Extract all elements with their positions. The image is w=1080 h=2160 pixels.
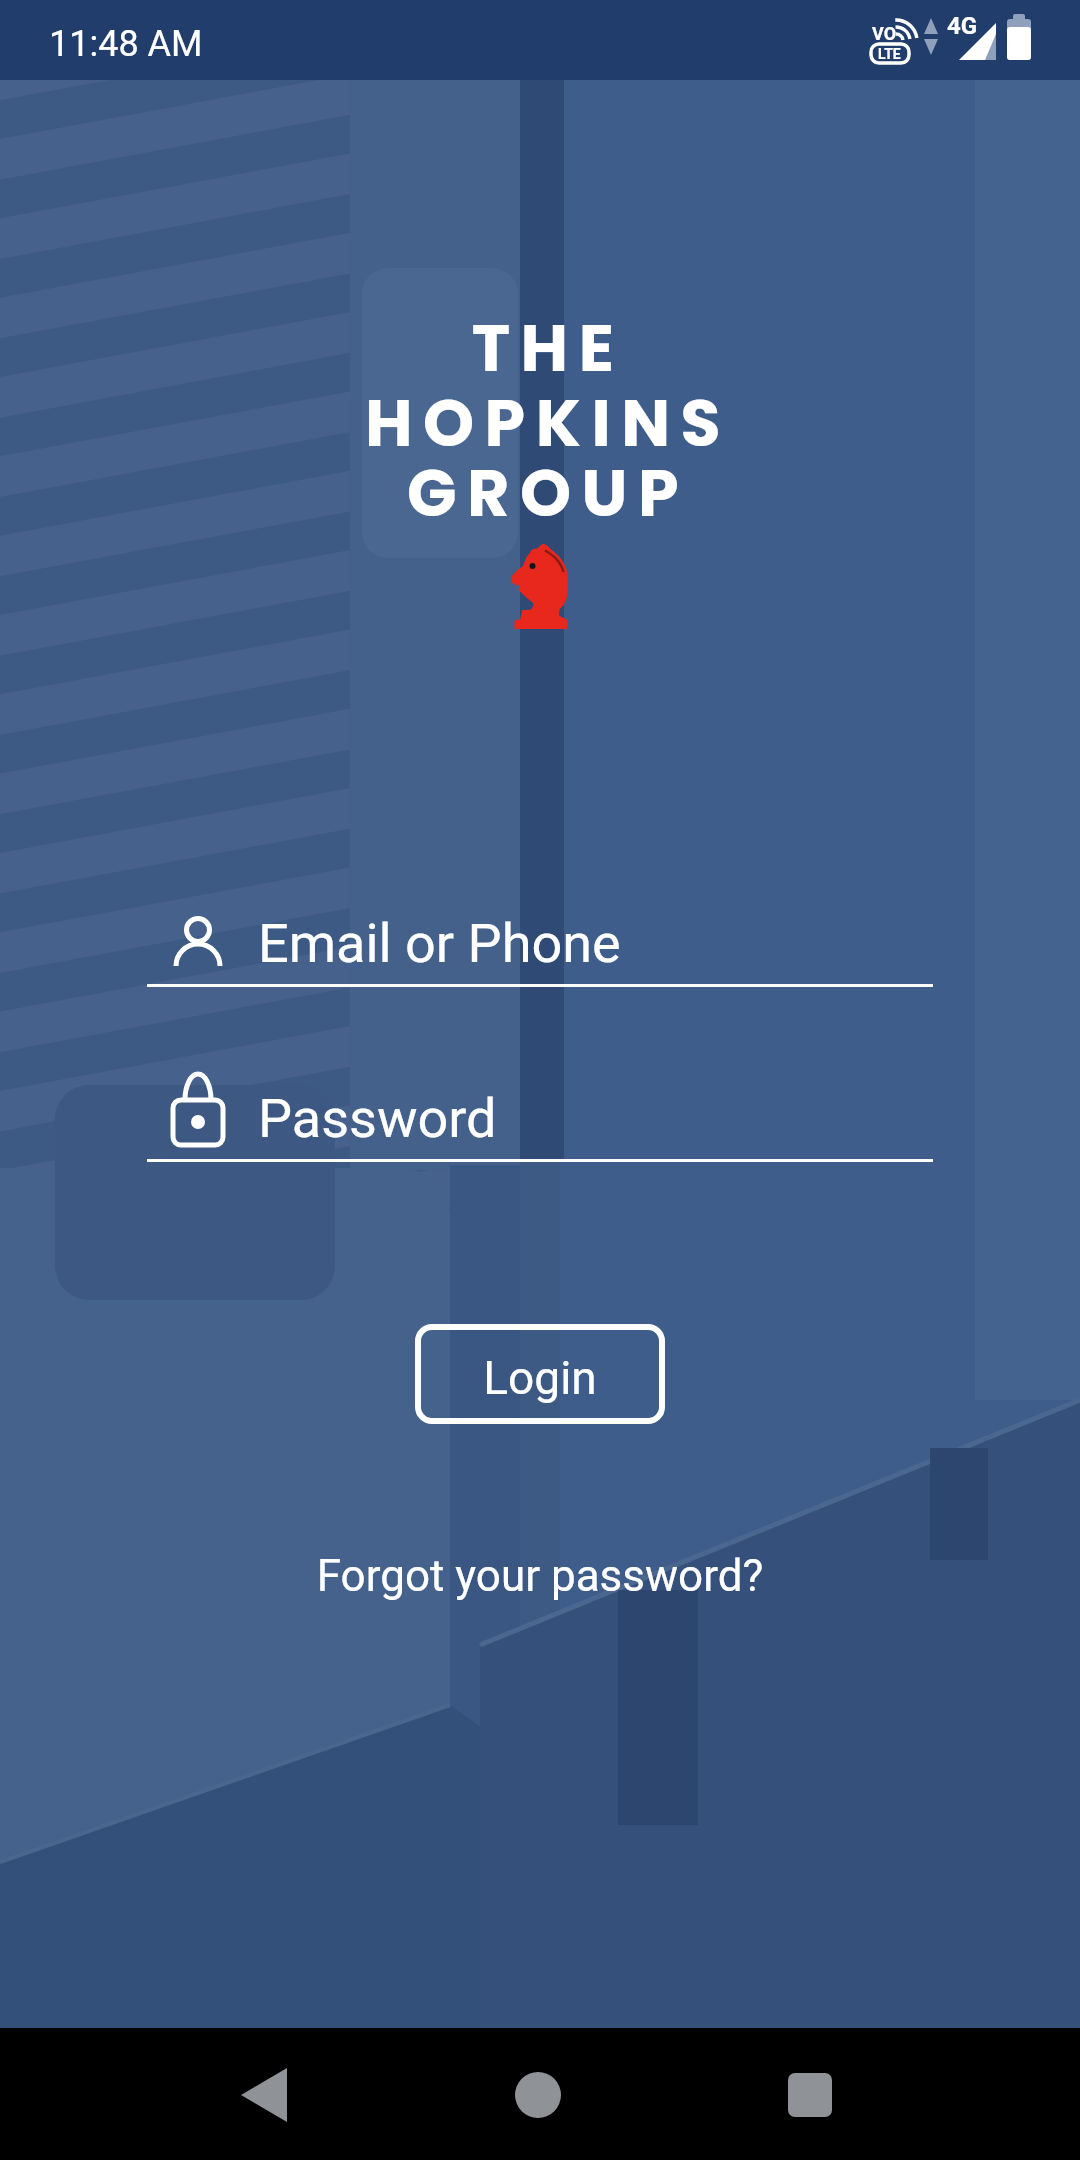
staticText: Email or Phone <box>258 912 621 975</box>
staticText: Password <box>258 1087 497 1150</box>
staticText: Forgot your password? <box>240 1550 840 1602</box>
button[interactable] <box>488 2045 588 2145</box>
staticText: 4G <box>947 12 978 40</box>
staticText: GROUP <box>8 448 1080 539</box>
staticText: VO <box>872 23 897 44</box>
button[interactable]: Email or Phone <box>147 900 933 988</box>
button[interactable] <box>215 2045 315 2145</box>
staticText: Login <box>415 1351 665 1405</box>
button[interactable]: Password <box>147 1075 933 1163</box>
staticText: THE <box>8 303 1080 394</box>
button[interactable]: Login <box>415 1324 665 1424</box>
staticText: 11:48 AM <box>49 23 203 65</box>
button[interactable] <box>762 2045 862 2145</box>
staticText: LTE <box>878 46 901 62</box>
button[interactable]: Forgot your password? <box>240 1550 840 1612</box>
staticText: HOPKINS <box>8 378 1080 469</box>
